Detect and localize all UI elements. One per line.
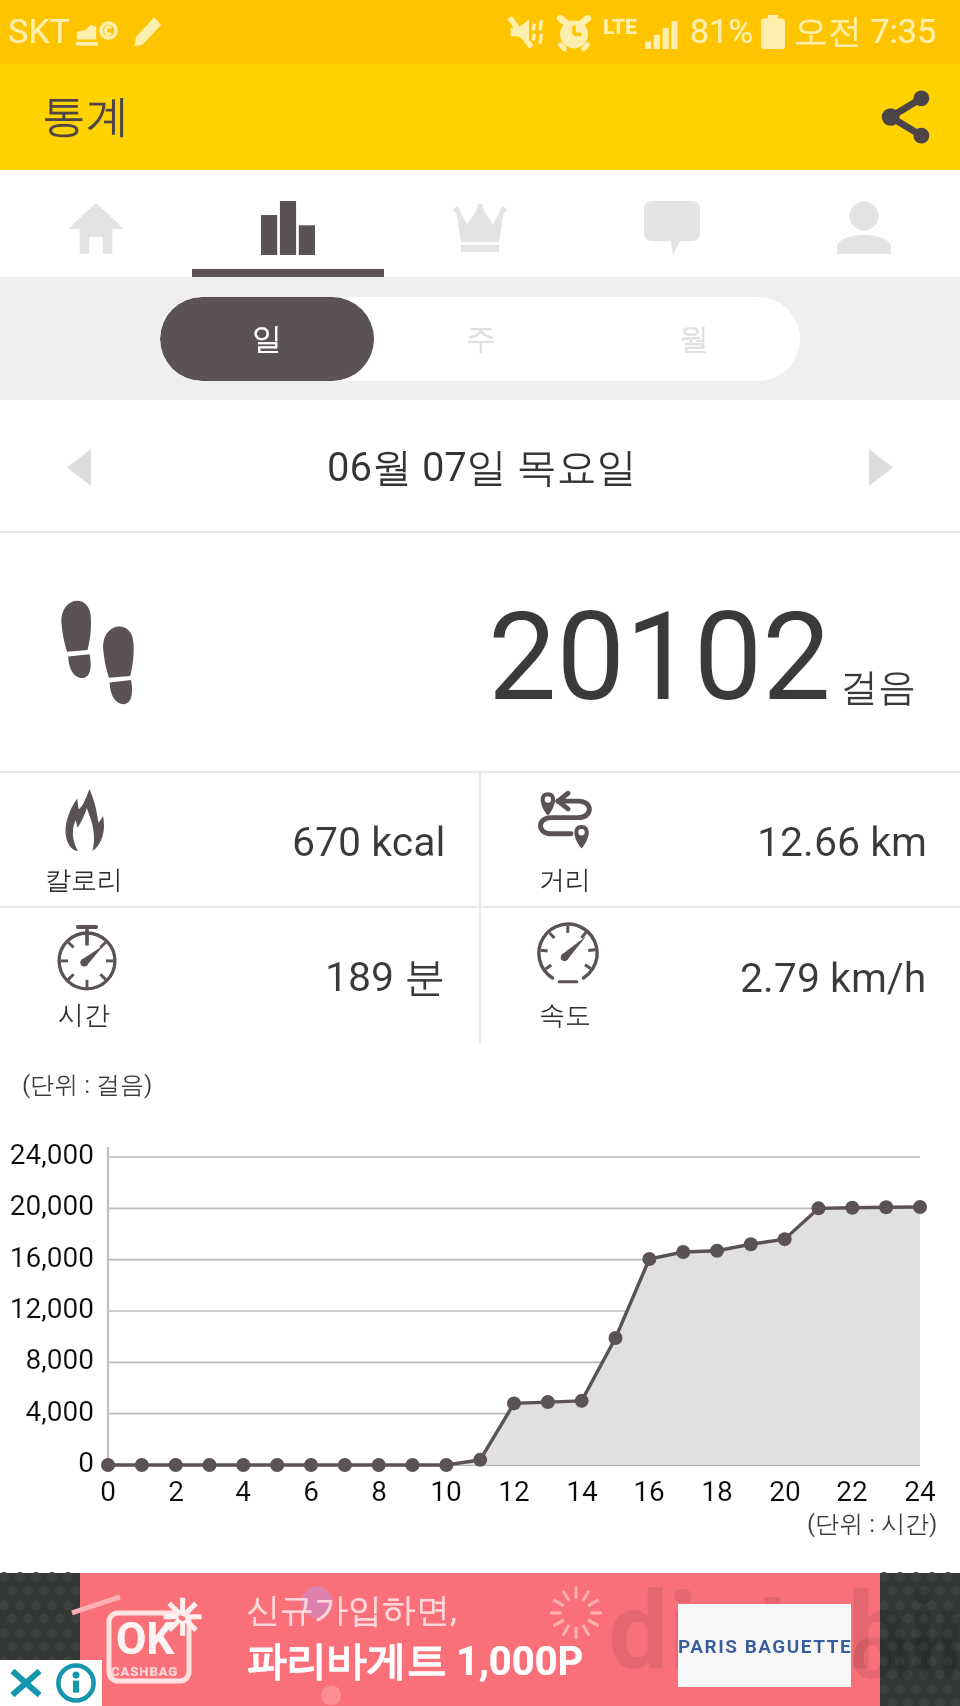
staticText: 월 bbox=[679, 320, 709, 358]
staticText: LTE bbox=[603, 15, 637, 40]
other: Close ad bbox=[6, 1663, 46, 1703]
staticText: 속도 bbox=[500, 999, 630, 1032]
staticText: 14 bbox=[552, 1475, 612, 1508]
button[interactable]: Ranking bbox=[384, 170, 576, 277]
button[interactable]: 속도 bbox=[481, 908, 960, 1043]
button[interactable]: Previous day bbox=[46, 434, 112, 500]
button[interactable]: Home bbox=[0, 170, 192, 277]
button[interactable]: OK bbox=[0, 1573, 960, 1706]
staticText: 걸음 bbox=[840, 663, 916, 711]
staticText: 12,000 bbox=[0, 1292, 94, 1325]
staticText: 0 bbox=[0, 1446, 94, 1479]
staticText: 10 bbox=[416, 1475, 476, 1508]
staticText: 오전 7:35 bbox=[794, 10, 936, 53]
staticText: SKT bbox=[8, 11, 70, 51]
button[interactable]: Share bbox=[870, 81, 942, 153]
staticText: 통계 bbox=[42, 89, 130, 144]
button[interactable]: 일 bbox=[160, 297, 374, 381]
staticText: OK bbox=[116, 1613, 175, 1665]
staticText: 일 bbox=[252, 320, 282, 358]
staticText: 18 bbox=[687, 1475, 747, 1508]
staticText: 8,000 bbox=[0, 1343, 94, 1376]
staticText: 6 bbox=[281, 1475, 341, 1508]
other: Ad info bbox=[56, 1663, 96, 1703]
staticText: 20 bbox=[755, 1475, 815, 1508]
staticText: 12 bbox=[484, 1475, 544, 1508]
staticText: CASHBAG bbox=[111, 1664, 179, 1679]
staticText: dietshin bbox=[608, 1568, 960, 1695]
staticText: 주 bbox=[466, 320, 496, 358]
button[interactable]: 시간 bbox=[0, 908, 479, 1043]
staticText: 670 kcal bbox=[292, 818, 446, 866]
staticText: 24,000 bbox=[0, 1138, 94, 1171]
button[interactable]: Chat bbox=[576, 170, 768, 277]
staticText: 칼로리 bbox=[19, 864, 149, 897]
staticText: 4,000 bbox=[0, 1395, 94, 1428]
staticText: PARIS BAGUETTE bbox=[678, 1635, 851, 1657]
staticText: 2 bbox=[146, 1475, 206, 1508]
staticText: .com bbox=[789, 1607, 960, 1696]
staticText: 81% bbox=[690, 11, 754, 51]
staticText: 2.79 km/h bbox=[740, 954, 927, 1002]
button[interactable]: Statistics bbox=[192, 170, 384, 277]
staticText: 20,000 bbox=[0, 1189, 94, 1222]
staticText: 0 bbox=[78, 1475, 138, 1508]
button[interactable]: Profile bbox=[768, 170, 960, 277]
staticText: 12.66 km bbox=[757, 818, 927, 866]
staticText: 신규가입하면, bbox=[246, 1589, 457, 1632]
staticText: 20102 bbox=[488, 586, 831, 729]
staticText: 거리 bbox=[500, 864, 630, 897]
staticText: 16 bbox=[619, 1475, 679, 1508]
button[interactable]: Next day bbox=[848, 434, 914, 500]
staticText: 파리바게트 1,000P bbox=[246, 1636, 584, 1686]
staticText: 189 분 bbox=[325, 952, 446, 1004]
staticText: 22 bbox=[822, 1475, 882, 1508]
button[interactable]: 주 bbox=[374, 297, 587, 381]
staticText: 4 bbox=[213, 1475, 273, 1508]
staticText: (단위 : 걸음) bbox=[22, 1070, 153, 1100]
button[interactable]: 거리 bbox=[481, 773, 960, 906]
staticText: 06월 07일 목요일 bbox=[327, 442, 637, 492]
staticText: 24 bbox=[890, 1475, 950, 1508]
button[interactable]: 칼로리 bbox=[0, 773, 479, 906]
staticText: 8 bbox=[349, 1475, 409, 1508]
button[interactable]: 월 bbox=[587, 297, 800, 381]
staticText: 16,000 bbox=[0, 1241, 94, 1274]
staticText: 시간 bbox=[19, 999, 149, 1032]
staticText: (단위 : 시간) bbox=[807, 1509, 938, 1539]
